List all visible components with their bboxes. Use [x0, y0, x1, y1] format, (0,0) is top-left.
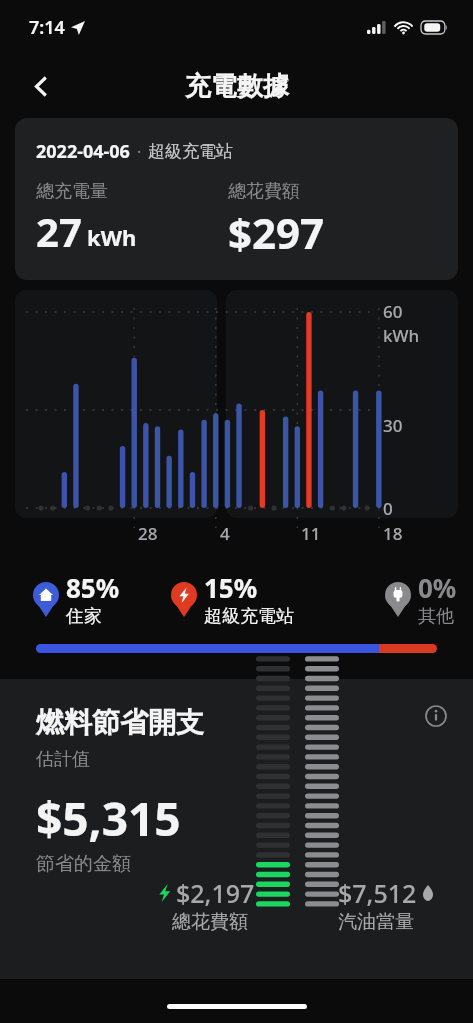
staticText: 4 — [220, 522, 230, 545]
staticText: 總充電量 — [36, 180, 108, 203]
button[interactable]: 85% — [33, 570, 171, 628]
staticText: $5,315 — [36, 787, 181, 850]
staticText: 18 — [383, 522, 403, 545]
staticText: $2,197 — [176, 876, 255, 910]
staticText: 充電數據 — [185, 70, 289, 103]
staticText: 汽油當量 — [338, 910, 414, 934]
staticText: kWh — [383, 324, 420, 347]
staticText: $7,512 — [338, 876, 417, 910]
staticText: 超級充電站 — [148, 141, 233, 162]
button[interactable]: 0% — [385, 570, 457, 628]
staticText: 節省的金額 — [36, 852, 131, 876]
staticText: kWh — [87, 222, 137, 252]
staticText: 7:14 — [29, 15, 65, 40]
staticText: · — [137, 141, 142, 163]
staticText: 0% — [418, 570, 457, 605]
staticText: 0 — [383, 497, 393, 520]
staticText: 11 — [301, 522, 321, 545]
staticText: 燃料節省開支 — [36, 705, 204, 740]
staticText: 總花費額 — [172, 910, 248, 934]
button[interactable]: Info — [419, 699, 453, 733]
button[interactable] — [36, 644, 437, 653]
staticText: 超級充電站 — [204, 605, 294, 628]
staticText: 28 — [138, 522, 158, 545]
button[interactable]: 2022-04-06 — [15, 118, 458, 280]
staticText: 估計值 — [36, 748, 90, 771]
staticText: 85% — [66, 570, 120, 605]
button[interactable]: Back — [18, 63, 64, 109]
staticText: 15% — [204, 570, 258, 605]
staticText: 60 — [383, 300, 403, 323]
staticText: 總花費額 — [228, 180, 300, 203]
staticText: 其他 — [418, 605, 454, 628]
staticText: $297 — [228, 204, 325, 261]
staticText: 住家 — [66, 605, 102, 628]
staticText: 27 — [36, 204, 82, 258]
staticText: 30 — [383, 414, 403, 437]
staticText: 2022-04-06 — [36, 139, 130, 164]
button[interactable]: 15% — [171, 570, 385, 628]
